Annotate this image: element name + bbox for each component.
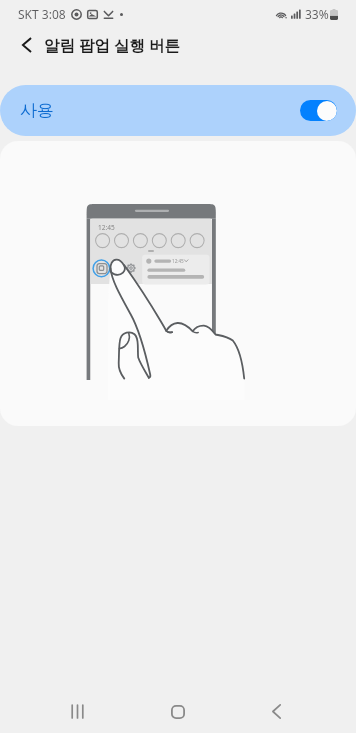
staticText: 사용 xyxy=(20,100,54,121)
button[interactable]: Home xyxy=(155,689,200,733)
button[interactable]: Recents xyxy=(55,689,100,733)
staticText: 12:45 xyxy=(172,258,184,264)
staticText: SKT 3:08 xyxy=(18,6,66,22)
staticText: 알림 팝업 실행 버튼 xyxy=(44,34,181,55)
button[interactable]: 사용 xyxy=(0,85,356,136)
button[interactable]: Back xyxy=(254,689,299,733)
button[interactable]: Back xyxy=(4,29,48,61)
staticText: 33% xyxy=(305,6,329,22)
staticText: 12:45 xyxy=(98,223,115,232)
